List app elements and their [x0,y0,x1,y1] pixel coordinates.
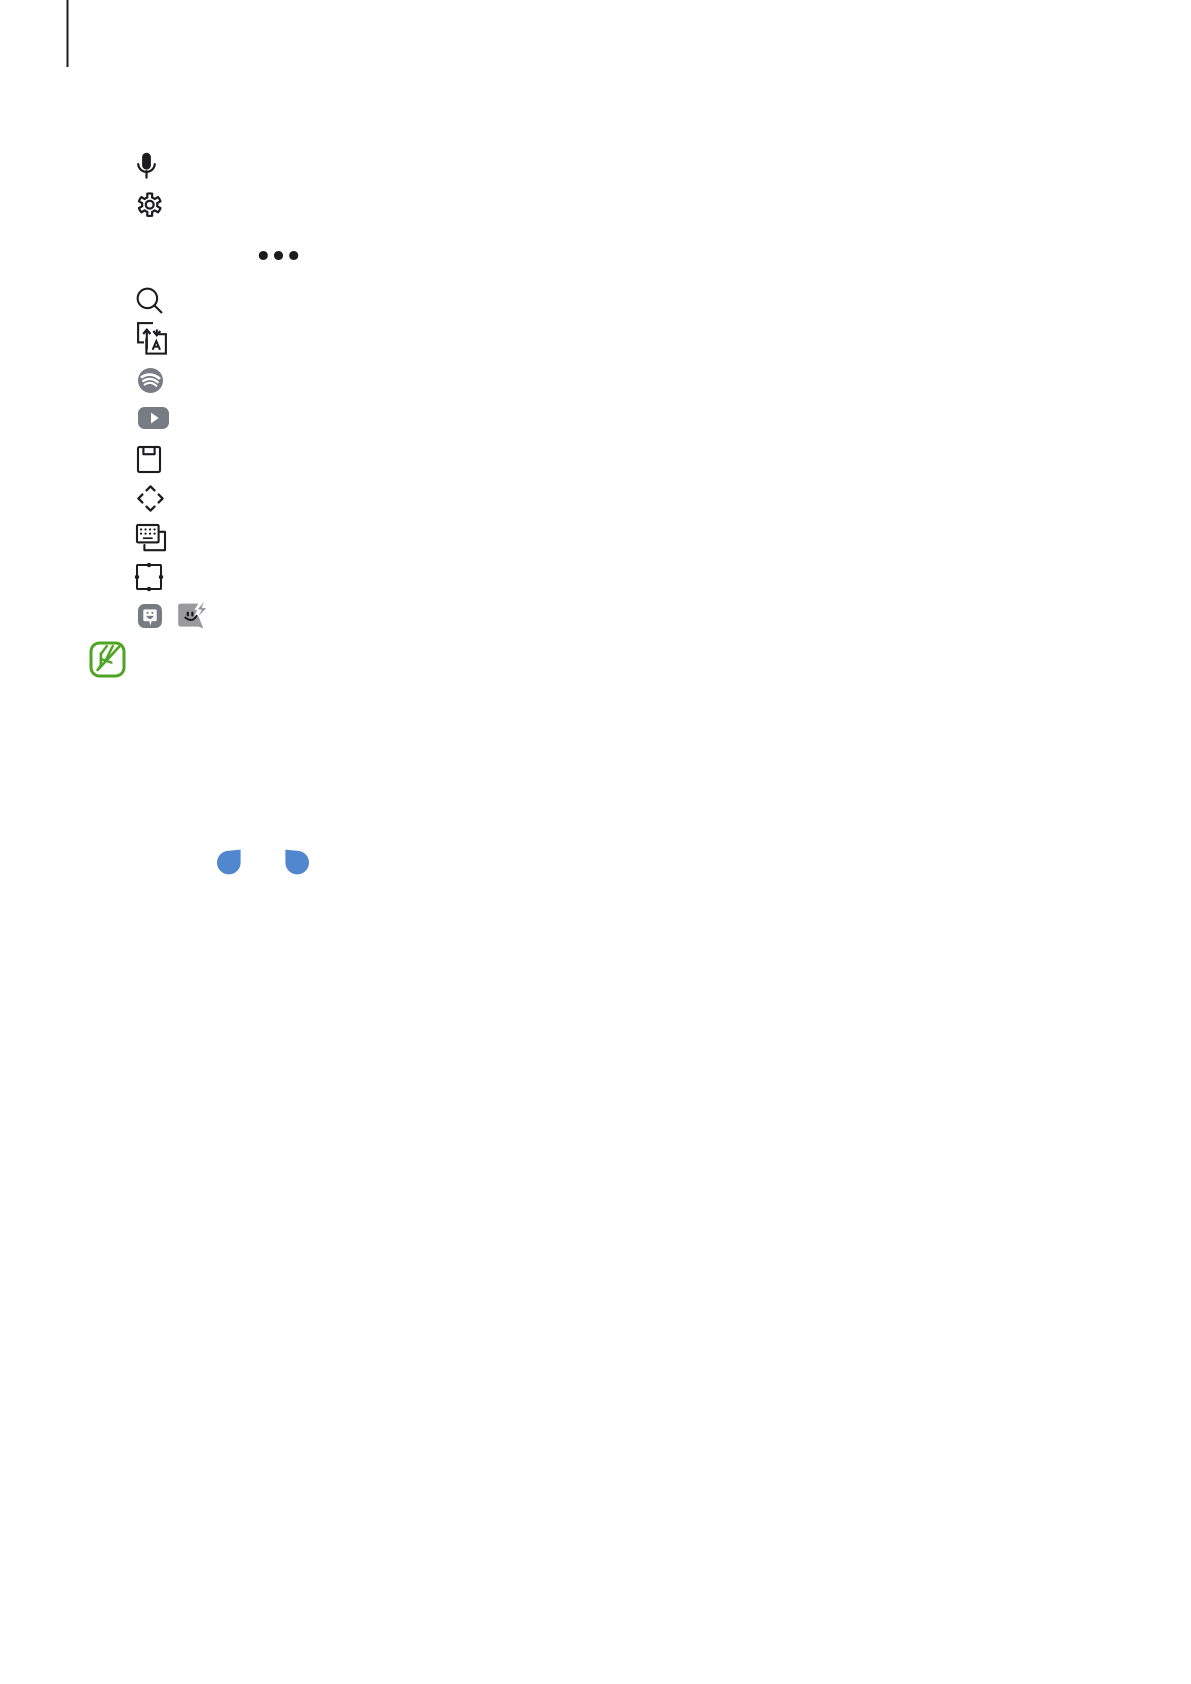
button[interactable]: Settings [137,192,162,217]
button[interactable]: Samsung Notes [91,643,124,676]
button[interactable]: Selection start handle [217,849,241,875]
button[interactable]: Resize [136,564,162,590]
button[interactable]: More options [259,251,298,260]
button[interactable]: Selection end handle [285,849,309,875]
button[interactable]: Translate [137,322,167,355]
button[interactable]: Switch keyboard [137,525,166,551]
button[interactable]: Voice input [137,152,156,180]
button[interactable]: Clipboard [138,447,160,472]
button[interactable]: Move [137,485,164,512]
button[interactable]: Spotify [138,368,163,393]
button[interactable]: Stickers [138,604,162,628]
button[interactable]: YouTube [138,407,169,429]
button[interactable]: Search [137,288,163,314]
button[interactable]: Emoji suggestions [176,599,208,631]
